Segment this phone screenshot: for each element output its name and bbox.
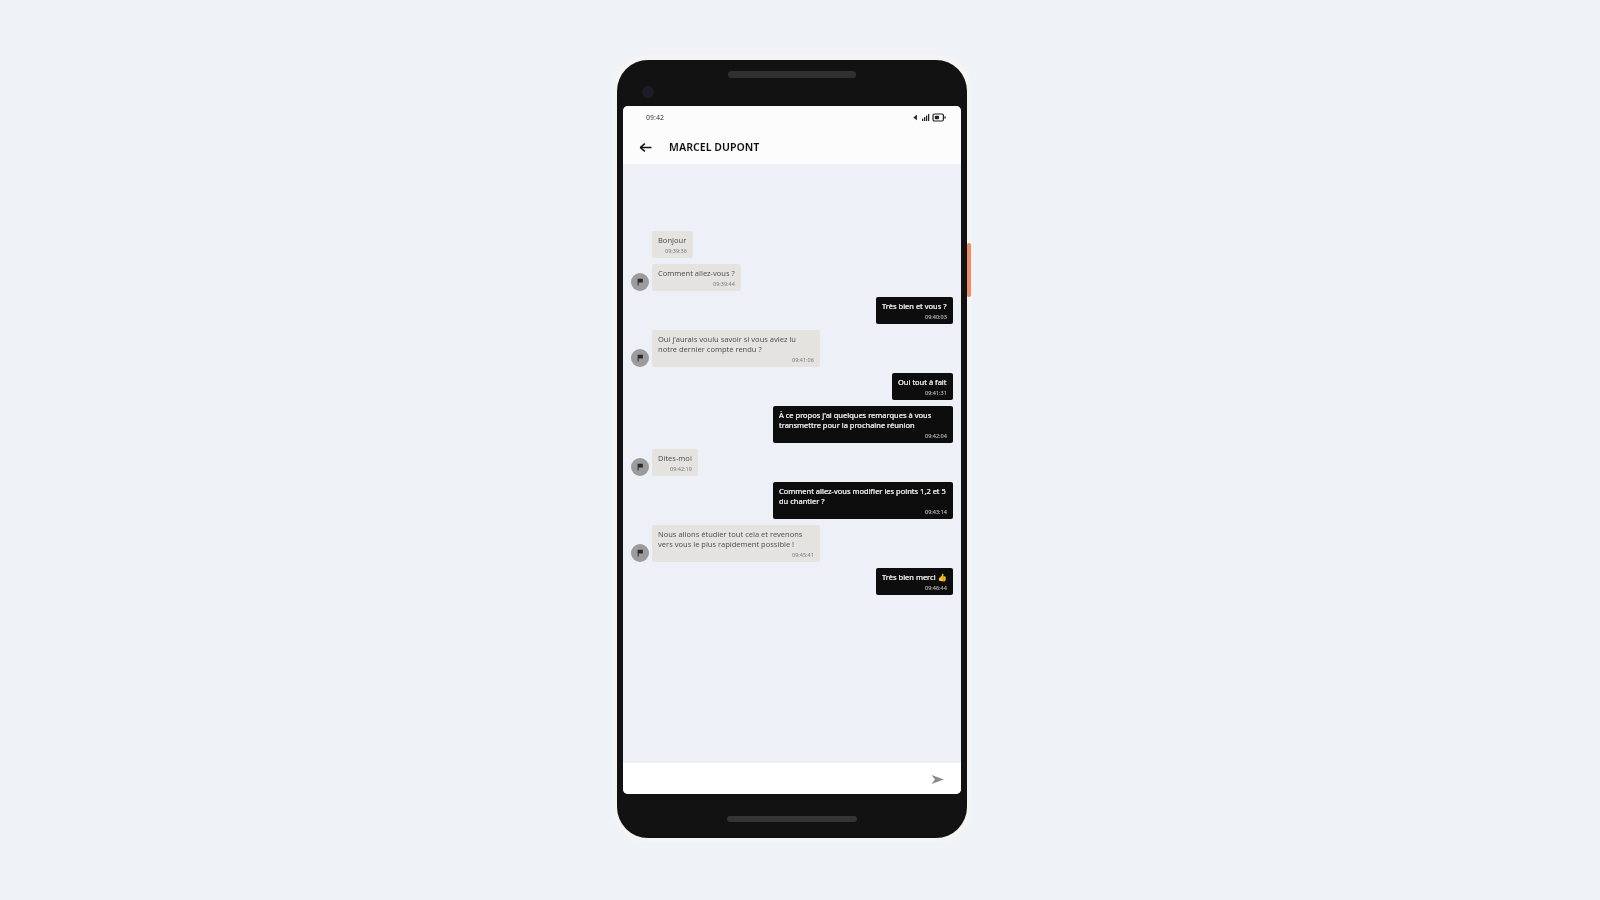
button[interactable]: Très bien et vous ? [876,297,953,324]
staticText: Très bien merci 👍 [882,572,947,582]
staticText: 09:42:19 [670,465,692,472]
button[interactable]: Comment allez-vous ? [652,264,741,291]
staticText: 09:46:44 [925,584,947,591]
button[interactable]: Contact avatar [631,544,649,562]
staticText: MARCEL DUPONT [669,140,760,154]
staticText: 09:45:41 [792,551,814,558]
staticText: Nous allons étudier tout cela et revenon… [658,529,814,549]
staticText: Oui j'aurais voulu savoir si vous aviez … [658,334,814,354]
staticText: Dites-moi [658,453,692,463]
staticText: Oui tout à fait [898,377,947,387]
staticText: Comment allez-vous ? [658,268,735,278]
button[interactable]: Très bien merci 👍 [876,568,953,595]
button[interactable]: Contact avatar [631,349,649,367]
staticText: Très bien et vous ? [882,301,947,311]
staticText: À ce propos j'ai quelques remarques à vo… [779,410,947,430]
button[interactable]: Dites-moi [652,449,698,476]
staticText: 09:42:04 [925,432,947,439]
button[interactable]: Back [632,134,658,160]
button[interactable]: Nous allons étudier tout cela et revenon… [652,525,820,562]
button[interactable]: À ce propos j'ai quelques remarques à vo… [773,406,953,443]
button[interactable]: Bonjour [652,231,693,258]
button[interactable]: Send [926,768,948,790]
button[interactable]: Oui j'aurais voulu savoir si vous aviez … [652,330,820,367]
staticText: 09:39:44 [713,280,735,287]
staticText: 09:40:03 [925,313,947,320]
staticText: Bonjour [658,235,687,245]
staticText: 09:42 [646,113,664,123]
staticText: 09:41:06 [792,356,814,363]
staticText: 09:43:14 [925,508,947,515]
button[interactable]: Contact avatar [631,458,649,476]
button[interactable]: Contact avatar [631,273,649,291]
staticText: 09:41:31 [925,389,947,396]
staticText: Comment allez-vous modifier les points 1… [779,486,947,506]
button[interactable]: Oui tout à fait [892,373,953,400]
staticText: 09:39:36 [665,247,687,254]
button[interactable]: Comment allez-vous modifier les points 1… [773,482,953,519]
